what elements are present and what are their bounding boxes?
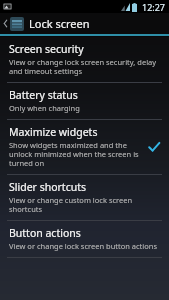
button[interactable]: Button actions bbox=[0, 221, 169, 257]
staticText: Show widgets maximized and the unlock mi… bbox=[9, 140, 140, 168]
button[interactable]: Maximize widgets bbox=[0, 120, 169, 174]
staticText: Battery status bbox=[9, 88, 78, 102]
button[interactable]: Screen security bbox=[0, 37, 169, 82]
staticText: Button actions bbox=[9, 226, 81, 240]
staticText: View or change custom lock screen shortc… bbox=[9, 195, 163, 214]
staticText: View or change lock screen security, del… bbox=[9, 57, 163, 76]
button[interactable]: Battery status bbox=[0, 83, 169, 119]
staticText: 12:27 bbox=[142, 1, 166, 13]
staticText: Lock screen bbox=[29, 16, 90, 31]
button[interactable]: Back to settings bbox=[0, 13, 169, 34]
staticText: Only when charging bbox=[9, 103, 80, 113]
staticText: View or change lock screen button action… bbox=[9, 241, 158, 251]
button[interactable]: Maximize widgets checkbox bbox=[144, 137, 163, 156]
staticText: Slider shortcuts bbox=[9, 180, 86, 194]
button[interactable]: Slider shortcuts bbox=[0, 175, 169, 220]
staticText: Screen security bbox=[9, 42, 84, 56]
staticText: Maximize widgets bbox=[9, 125, 98, 139]
